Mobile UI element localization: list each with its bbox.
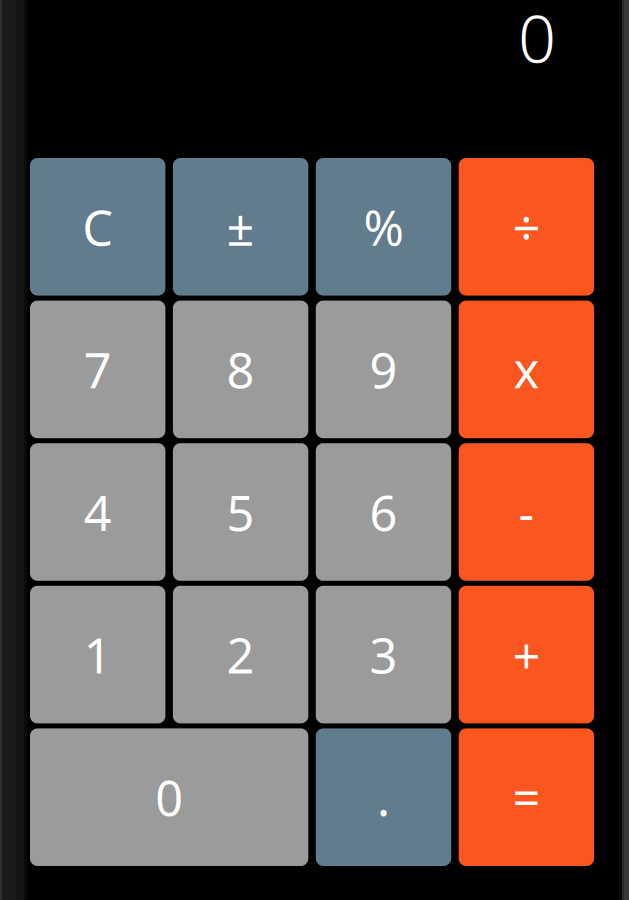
button[interactable]: 4 bbox=[30, 443, 165, 581]
staticText: x bbox=[513, 336, 539, 403]
button[interactable]: Clear bbox=[30, 158, 165, 296]
staticText: 8 bbox=[227, 336, 255, 403]
staticText: 2 bbox=[227, 621, 255, 688]
staticText: % bbox=[363, 194, 403, 260]
staticText: 0 bbox=[155, 764, 183, 830]
staticText: 5 bbox=[227, 479, 255, 545]
staticText: 1 bbox=[84, 621, 112, 688]
staticText: 0 bbox=[518, 0, 556, 74]
button[interactable]: Divide bbox=[459, 158, 594, 296]
staticText: C bbox=[82, 194, 113, 260]
button[interactable]: 9 bbox=[316, 301, 451, 438]
staticText: 6 bbox=[369, 479, 397, 545]
button[interactable]: Multiply bbox=[459, 301, 594, 438]
staticText: + bbox=[512, 621, 540, 688]
button[interactable]: 2 bbox=[173, 586, 308, 723]
button[interactable]: 7 bbox=[30, 301, 165, 438]
button[interactable]: Equals bbox=[459, 728, 594, 866]
staticText: 3 bbox=[369, 621, 397, 688]
button[interactable]: Add bbox=[459, 586, 594, 723]
button[interactable]: 6 bbox=[316, 443, 451, 581]
staticText: = bbox=[512, 764, 540, 830]
button[interactable]: Plus minus bbox=[173, 158, 308, 296]
button[interactable]: 5 bbox=[173, 443, 308, 581]
button[interactable]: Decimal point bbox=[316, 728, 451, 866]
staticText: - bbox=[518, 479, 534, 545]
button[interactable]: 0 bbox=[30, 728, 308, 866]
button[interactable]: Percent bbox=[316, 158, 451, 296]
button[interactable]: Subtract bbox=[459, 443, 594, 581]
staticText: ÷ bbox=[512, 194, 540, 260]
staticText: 4 bbox=[84, 479, 112, 545]
staticText: ± bbox=[227, 194, 255, 260]
button[interactable]: 1 bbox=[30, 586, 165, 723]
staticText: 9 bbox=[369, 336, 397, 403]
button[interactable]: 3 bbox=[316, 586, 451, 723]
staticText: 7 bbox=[84, 336, 112, 403]
button[interactable]: 8 bbox=[173, 301, 308, 438]
staticText: . bbox=[377, 764, 390, 830]
